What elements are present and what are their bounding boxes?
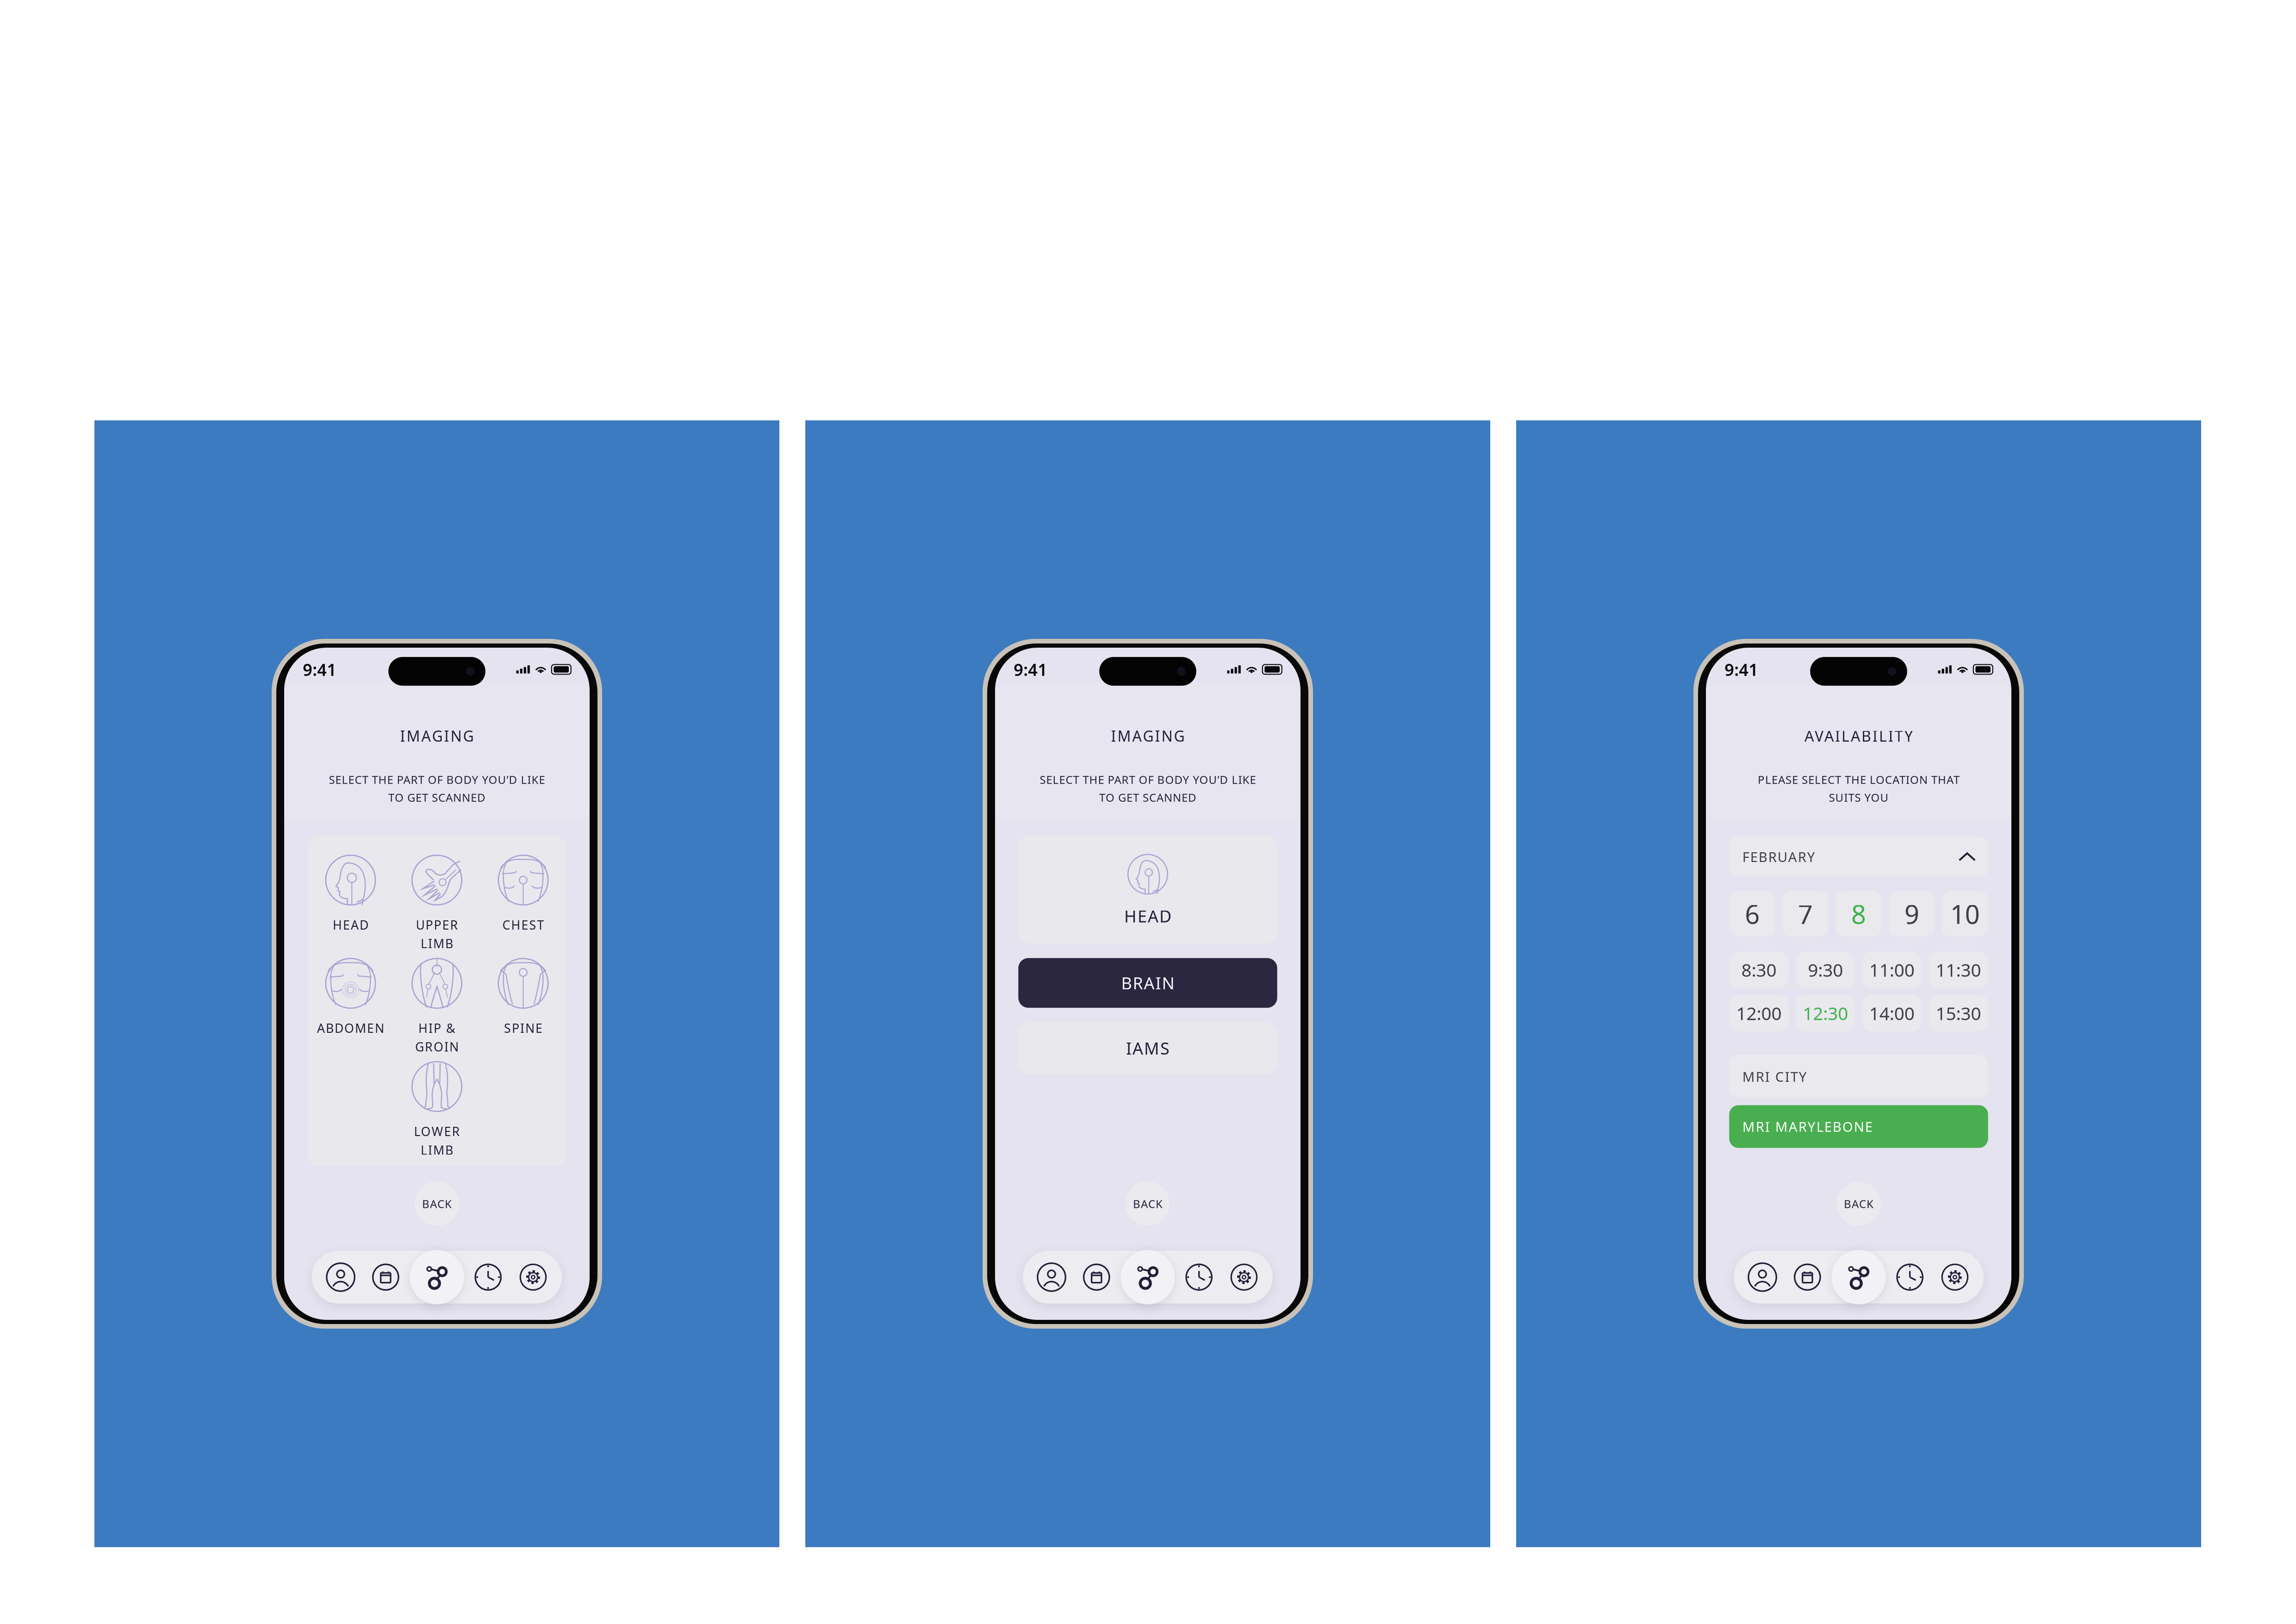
button[interactable]: BACK	[415, 1182, 459, 1226]
staticText: BACK	[1844, 1196, 1873, 1211]
staticText: ABDOMEN	[317, 1020, 384, 1036]
button[interactable]: Imaging	[1830, 1248, 1887, 1306]
button[interactable]: History	[1176, 1251, 1221, 1304]
button[interactable]: CHEST	[480, 855, 566, 942]
button[interactable]: FEBRUARY	[1729, 837, 1988, 877]
button[interactable]: BACK	[1837, 1182, 1881, 1226]
button[interactable]: 9:30	[1796, 951, 1855, 988]
button[interactable]: 11:30	[1929, 951, 1988, 988]
button[interactable]: SPINE	[480, 958, 566, 1045]
button[interactable]: 8:30	[1729, 951, 1789, 988]
button[interactable]: ABDOMEN	[307, 958, 394, 1045]
staticText: 9	[1904, 897, 1919, 931]
button[interactable]: Profile	[1740, 1251, 1785, 1304]
staticText: 14:00	[1869, 1001, 1915, 1025]
staticText: LOWER	[414, 1123, 460, 1139]
staticText: UPPER	[416, 917, 458, 933]
button[interactable]: BRAIN	[1018, 958, 1277, 1008]
button[interactable]: 10	[1942, 891, 1988, 937]
staticText: IMAGING	[1111, 726, 1185, 746]
button[interactable]: Appointments	[363, 1251, 408, 1304]
staticText: MRI MARYLEBONE	[1742, 1118, 1872, 1136]
staticText: 11:30	[1936, 958, 1981, 982]
button[interactable]: Appointments	[1074, 1251, 1119, 1304]
staticText: CHEST	[502, 917, 544, 933]
button[interactable]: Settings	[511, 1251, 556, 1304]
staticText: BACK	[422, 1196, 452, 1211]
button[interactable]: HEAD	[1018, 836, 1277, 943]
button[interactable]: Profile	[318, 1251, 363, 1304]
staticText: SUITS YOU	[1829, 790, 1888, 805]
button[interactable]: 15:30	[1929, 995, 1988, 1031]
staticText: HEAD	[333, 917, 368, 933]
button[interactable]: Appointments	[1785, 1251, 1830, 1304]
staticText: 6	[1745, 897, 1760, 931]
button[interactable]: BACK	[1126, 1182, 1170, 1226]
button[interactable]: History	[466, 1251, 511, 1304]
button[interactable]: Imaging	[408, 1248, 466, 1306]
button[interactable]: UPPER	[394, 855, 480, 942]
staticText: 15:30	[1936, 1001, 1981, 1025]
button[interactable]: 8	[1836, 891, 1882, 937]
button[interactable]: Profile	[1029, 1251, 1074, 1304]
button[interactable]: Settings	[1932, 1251, 1977, 1304]
staticText: HIP &	[418, 1020, 455, 1036]
button[interactable]: 12:30	[1796, 995, 1855, 1031]
staticText: 12:00	[1736, 1001, 1782, 1025]
staticText: 8	[1851, 897, 1866, 931]
staticText: 11:00	[1869, 958, 1915, 982]
staticText: SELECT THE PART OF BODY YOU’D LIKE	[329, 772, 545, 787]
button[interactable]: 12:00	[1729, 995, 1789, 1031]
staticText: FEBRUARY	[1742, 848, 1815, 866]
button[interactable]: 6	[1729, 891, 1775, 937]
button[interactable]: 11:00	[1862, 951, 1922, 988]
staticText: 10	[1950, 897, 1980, 931]
staticText: HEAD	[1124, 905, 1171, 927]
staticText: BRAIN	[1121, 972, 1174, 994]
button[interactable]: Settings	[1221, 1251, 1267, 1304]
button[interactable]: 7	[1782, 891, 1829, 937]
button[interactable]: 9	[1889, 891, 1935, 937]
staticText: LIMB	[421, 1142, 453, 1158]
staticText: 8:30	[1741, 958, 1777, 982]
button[interactable]: MRI CITY	[1729, 1055, 1988, 1098]
staticText: GROIN	[415, 1039, 459, 1055]
button[interactable]: History	[1887, 1251, 1932, 1304]
button[interactable]: HIP &	[394, 958, 480, 1045]
staticText: 9:41	[1725, 658, 1758, 680]
staticText: AVAILABILITY	[1804, 726, 1913, 746]
staticText: 9:30	[1808, 958, 1843, 982]
button[interactable]: IAMS	[1018, 1023, 1277, 1074]
button[interactable]: HEAD	[307, 855, 394, 942]
staticText: IAMS	[1126, 1037, 1170, 1059]
staticText: MRI CITY	[1742, 1067, 1807, 1086]
button[interactable]: MRI MARYLEBONE	[1729, 1105, 1988, 1148]
staticText: SPINE	[504, 1020, 542, 1036]
button[interactable]: Imaging	[1119, 1248, 1177, 1306]
staticText: SELECT THE PART OF BODY YOU’D LIKE	[1040, 772, 1256, 787]
staticText: TO GET SCANNED	[1099, 790, 1196, 805]
button[interactable]: LOWER	[307, 1062, 566, 1149]
staticText: PLEASE SELECT THE LOCATION THAT	[1758, 772, 1960, 787]
button[interactable]: 14:00	[1862, 995, 1922, 1031]
staticText: 7	[1798, 897, 1813, 931]
staticText: 12:30	[1803, 1001, 1848, 1025]
staticText: 9:41	[303, 658, 337, 680]
staticText: BACK	[1133, 1196, 1163, 1211]
staticText: TO GET SCANNED	[388, 790, 485, 805]
staticText: 9:41	[1014, 658, 1047, 680]
staticText: IMAGING	[400, 726, 474, 746]
staticText: LIMB	[421, 935, 453, 952]
